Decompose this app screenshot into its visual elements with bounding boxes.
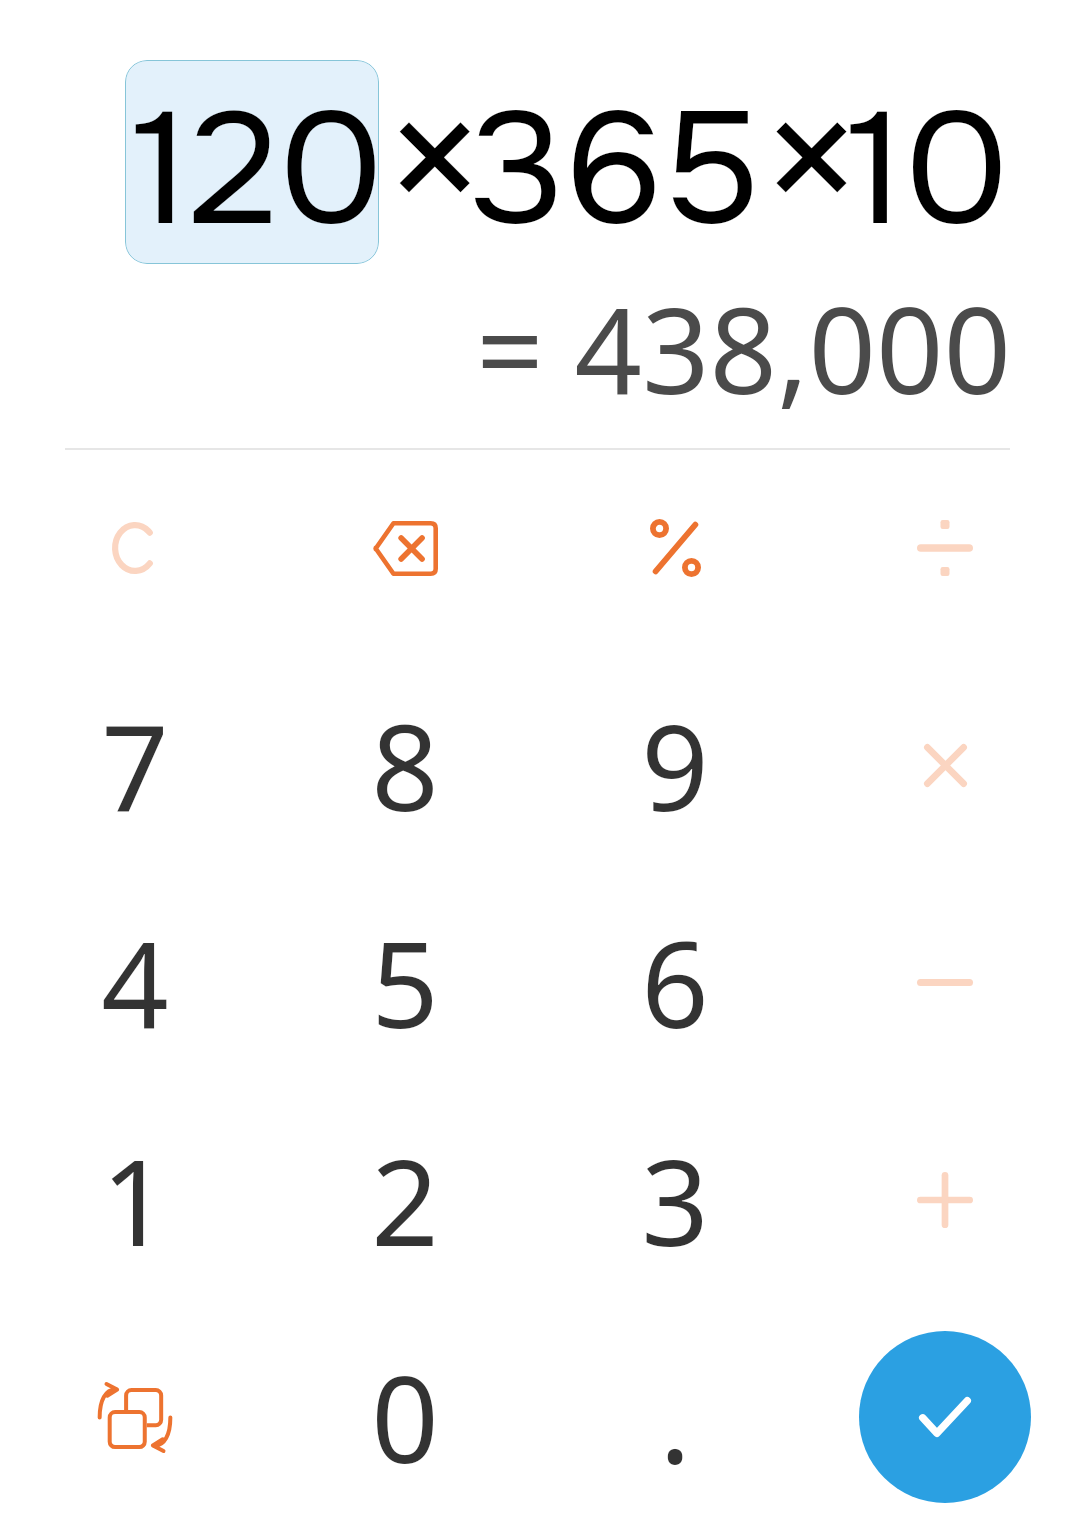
button[interactable]: 9 (540, 655, 810, 875)
button[interactable]: 2 (270, 1090, 540, 1310)
button[interactable]: 6 (540, 872, 810, 1092)
button[interactable]: Convert units (0, 1307, 270, 1527)
button[interactable]: . (540, 1307, 810, 1527)
button[interactable]: 5 (270, 872, 540, 1092)
button[interactable]: Equals (810, 1307, 1080, 1527)
button[interactable]: Minus (810, 872, 1080, 1092)
staticText: 4 (101, 902, 169, 1063)
button[interactable]: Backspace (270, 449, 540, 647)
staticText: 3 (641, 1120, 709, 1281)
staticText: . (659, 1337, 691, 1498)
button[interactable]: Multiply (810, 655, 1080, 875)
staticText: 0 (371, 1337, 439, 1498)
button[interactable]: 1 (0, 1090, 270, 1310)
staticText: = 438,000 (0, 268, 1011, 429)
staticText: 120×365×10 (0, 43, 1009, 280)
button[interactable]: Percent (540, 449, 810, 647)
staticText: 7 (101, 685, 169, 846)
button[interactable]: Divide (810, 449, 1080, 647)
button[interactable]: Plus (810, 1090, 1080, 1310)
button[interactable]: Clear (0, 449, 270, 647)
button[interactable]: 3 (540, 1090, 810, 1310)
staticText: 1 (101, 1120, 169, 1281)
button[interactable]: 7 (0, 655, 270, 875)
button[interactable]: 0 (270, 1307, 540, 1527)
staticText: 9 (641, 685, 709, 846)
staticText: 5 (371, 902, 439, 1063)
staticText: 6 (641, 902, 709, 1063)
staticText: 8 (371, 685, 439, 846)
button[interactable]: 8 (270, 655, 540, 875)
staticText: 2 (371, 1120, 439, 1281)
button[interactable]: 4 (0, 872, 270, 1092)
